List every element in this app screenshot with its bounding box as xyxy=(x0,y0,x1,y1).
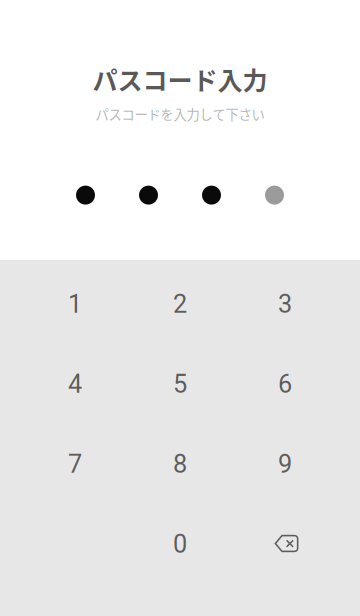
button[interactable]: 6 xyxy=(232,344,337,424)
staticText: パスコードを入力して下さい xyxy=(95,104,264,124)
button[interactable]: 8 xyxy=(127,424,232,504)
staticText: 3 xyxy=(278,289,292,319)
staticText: 1 xyxy=(68,289,82,319)
button[interactable]: 2 xyxy=(127,264,232,344)
staticText: 5 xyxy=(173,369,187,399)
button[interactable]: 3 xyxy=(232,264,337,344)
button[interactable]: 0 xyxy=(127,504,232,584)
staticText: 9 xyxy=(278,449,292,479)
staticText: 6 xyxy=(278,369,292,399)
staticText: 8 xyxy=(173,449,187,479)
button[interactable]: 5 xyxy=(127,344,232,424)
button[interactable]: 7 xyxy=(22,424,127,504)
staticText: 7 xyxy=(68,449,82,479)
button[interactable]: 1 xyxy=(22,264,127,344)
staticText: 0 xyxy=(173,529,187,559)
button[interactable]: Delete xyxy=(232,504,337,584)
staticText: 4 xyxy=(68,369,82,399)
staticText: 2 xyxy=(173,289,187,319)
button[interactable]: 4 xyxy=(22,344,127,424)
staticText: パスコード入力 xyxy=(92,61,267,97)
button[interactable]: 9 xyxy=(232,424,337,504)
